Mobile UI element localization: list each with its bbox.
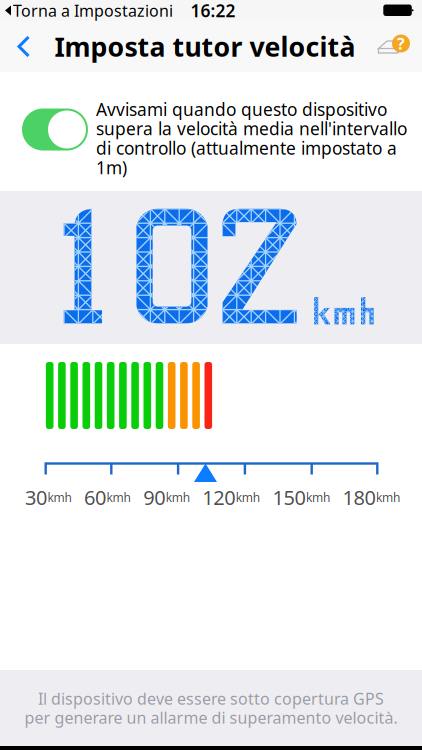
staticText: 30 (25, 484, 47, 511)
staticText: Torna a Impostazioni (13, 0, 173, 21)
staticText: 1m) (96, 156, 127, 179)
button[interactable]: Torna a Impostazioni (0, 0, 173, 18)
staticText: kmh (306, 489, 330, 505)
staticText: per generare un allarme di superamento v… (24, 707, 397, 728)
staticText: 16:22 (190, 0, 235, 22)
staticText: di controllo (attualmente impostato a (96, 136, 397, 159)
staticText: 120 (202, 484, 235, 511)
staticText: kmh (376, 489, 400, 505)
staticText: 60 (84, 484, 106, 511)
staticText: kmh (47, 489, 71, 505)
staticText: 180 (342, 484, 375, 511)
staticText: 150 (272, 484, 305, 511)
button[interactable]: Aiuto (365, 26, 422, 66)
button[interactable]: Indietro (0, 27, 45, 66)
staticText: kmh (236, 489, 260, 505)
staticText: Imposta tutor velocità (54, 29, 355, 64)
staticText: Avvisami quando questo dispositivo (96, 98, 387, 121)
staticText: supera la velocità media nell'intervallo (96, 117, 407, 140)
staticText: 90 (143, 484, 165, 511)
staticText: kmh (166, 489, 190, 505)
staticText: kmh (107, 489, 131, 505)
staticText: Il dispositivo deve essere sotto copertu… (38, 688, 384, 709)
button[interactable]: Avvisami quando questo dispositivo super… (22, 108, 88, 150)
staticText: ? (397, 33, 405, 54)
